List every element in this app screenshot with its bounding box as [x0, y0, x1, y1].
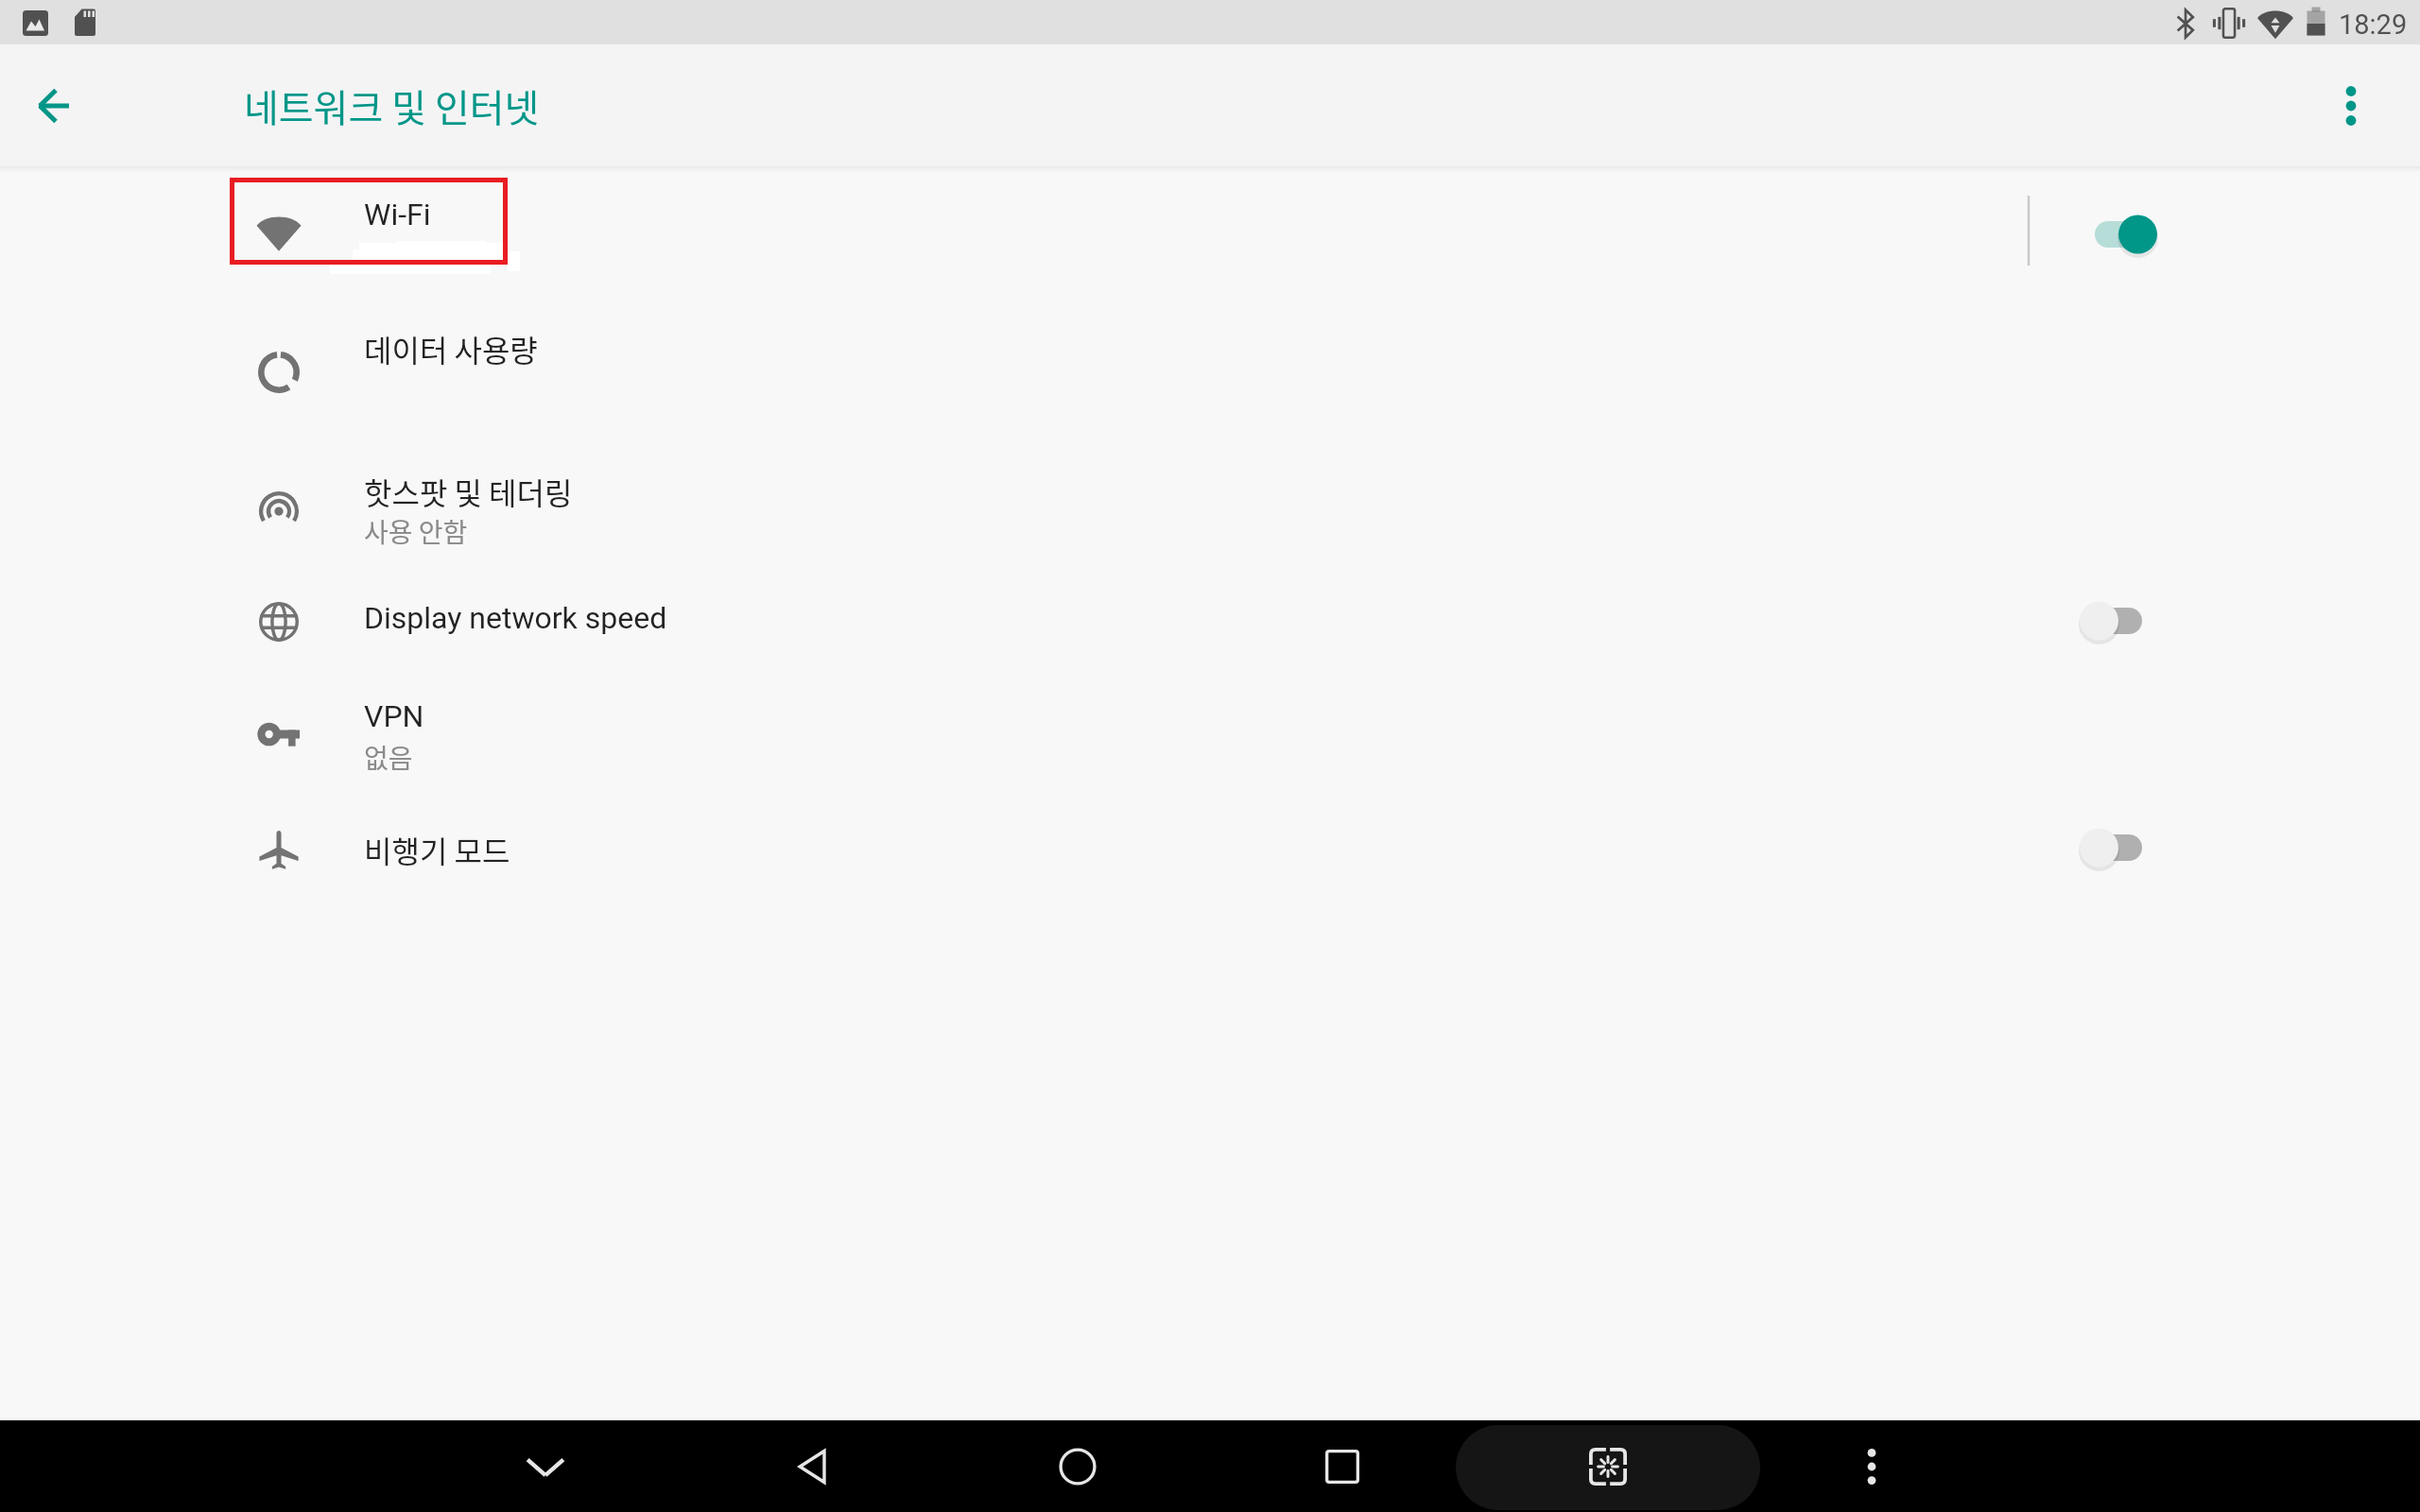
button[interactable]: More — [1826, 1421, 1917, 1512]
staticText: 핫스팟 및 테더링 — [364, 470, 573, 513]
button[interactable]: Back — [768, 1421, 858, 1512]
staticText: 네트워크 및 인터넷 — [244, 78, 540, 133]
staticText: VPN — [364, 698, 424, 734]
staticText: 비행기 모드 — [364, 828, 510, 871]
button[interactable]: Recents — [1297, 1421, 1388, 1512]
staticText: 사용 안함 — [364, 512, 468, 551]
button[interactable]: Wi-Fi — [0, 170, 2420, 291]
button[interactable]: Screenshot — [1456, 1425, 1760, 1510]
button[interactable]: 핫스팟 및 테더링 — [0, 437, 2420, 559]
staticText: Display network speed — [364, 600, 667, 636]
staticText: 데이터 사용량 — [364, 327, 538, 370]
staticText: 18:29 — [2339, 9, 2408, 41]
button[interactable]: Screenshot — [1563, 1421, 1653, 1512]
button[interactable]: VPN — [0, 669, 2420, 781]
button[interactable]: Display network speed — [0, 561, 2420, 667]
staticText: Wi-Fi — [364, 197, 431, 232]
button[interactable]: 비행기 모드 — [0, 782, 2420, 894]
button[interactable]: More options — [2316, 71, 2386, 141]
button[interactable]: Home — [1032, 1421, 1123, 1512]
staticText: 없음 — [364, 738, 413, 777]
button[interactable]: 데이터 사용량 — [0, 293, 2420, 435]
button[interactable]: Back — [19, 71, 89, 141]
button[interactable]: Hide keyboard — [500, 1421, 591, 1512]
